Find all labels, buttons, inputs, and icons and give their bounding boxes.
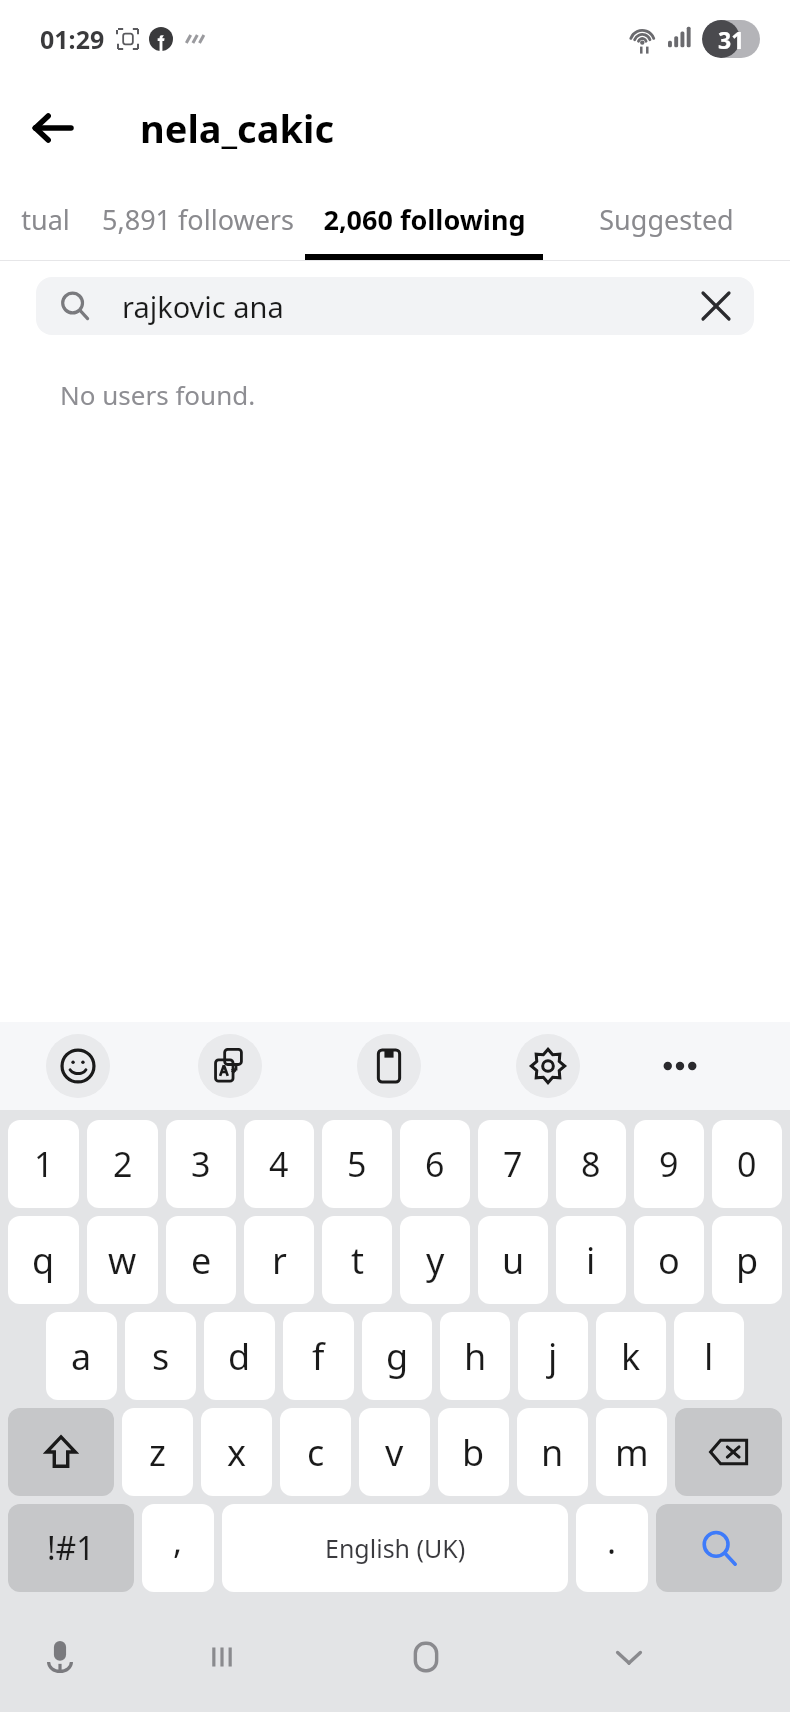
- button[interactable]: h: [440, 1312, 510, 1400]
- staticText: p: [736, 1236, 759, 1285]
- button[interactable]: Settings: [516, 1034, 580, 1098]
- button[interactable]: z: [122, 1408, 193, 1496]
- button[interactable]: !#1: [8, 1504, 134, 1592]
- button[interactable]: f: [283, 1312, 354, 1400]
- button[interactable]: 5,891 followers: [90, 178, 305, 260]
- staticText: 31: [718, 24, 745, 55]
- button[interactable]: k: [596, 1312, 666, 1400]
- button[interactable]: q: [8, 1216, 79, 1304]
- staticText: b: [462, 1428, 485, 1477]
- button[interactable]: rajkovic ana: [36, 277, 754, 335]
- staticText: s: [152, 1332, 170, 1381]
- staticText: x: [227, 1428, 247, 1477]
- staticText: r: [272, 1236, 287, 1285]
- staticText: nela_cakic: [140, 102, 334, 154]
- staticText: 7: [503, 1141, 523, 1187]
- staticText: y: [426, 1236, 445, 1285]
- staticText: m: [615, 1428, 649, 1477]
- staticText: d: [228, 1332, 251, 1381]
- staticText: 5: [347, 1141, 367, 1187]
- button[interactable]: Emoji: [46, 1034, 110, 1098]
- button[interactable]: 2: [87, 1120, 158, 1208]
- button[interactable]: g: [362, 1312, 432, 1400]
- staticText: k: [621, 1332, 641, 1381]
- staticText: i: [586, 1236, 596, 1285]
- button[interactable]: n: [517, 1408, 588, 1496]
- button[interactable]: 8: [556, 1120, 626, 1208]
- staticText: 8: [581, 1141, 601, 1187]
- staticText: 5,891 followers: [102, 201, 294, 238]
- button[interactable]: Recents: [120, 1602, 324, 1712]
- staticText: English (UK): [325, 1531, 466, 1565]
- button[interactable]: English (UK): [222, 1504, 568, 1592]
- staticText: .: [607, 1518, 617, 1564]
- staticText: 4: [269, 1141, 289, 1187]
- button[interactable]: i: [556, 1216, 626, 1304]
- staticText: ,: [173, 1518, 183, 1564]
- button[interactable]: j: [518, 1312, 588, 1400]
- button[interactable]: 6: [400, 1120, 470, 1208]
- button[interactable]: Hide keyboard: [527, 1602, 730, 1712]
- button[interactable]: e: [166, 1216, 236, 1304]
- button[interactable]: p: [712, 1216, 782, 1304]
- button[interactable]: a: [46, 1312, 117, 1400]
- button[interactable]: Home: [324, 1602, 527, 1712]
- button[interactable]: d: [204, 1312, 275, 1400]
- staticText: 6: [425, 1141, 445, 1187]
- staticText: z: [149, 1428, 166, 1477]
- button[interactable]: m: [596, 1408, 667, 1496]
- button[interactable]: Translate: [198, 1034, 262, 1098]
- button[interactable]: s: [125, 1312, 196, 1400]
- button[interactable]: 4: [244, 1120, 314, 1208]
- button[interactable]: Clipboard: [357, 1034, 421, 1098]
- button[interactable]: ,: [142, 1504, 214, 1592]
- button[interactable]: b: [438, 1408, 509, 1496]
- button[interactable]: Voice input: [0, 1602, 120, 1712]
- button[interactable]: v: [359, 1408, 430, 1496]
- button[interactable]: l: [674, 1312, 744, 1400]
- button[interactable]: tual: [0, 178, 90, 260]
- button[interactable]: 2,060 following: [305, 178, 543, 260]
- staticText: e: [191, 1236, 212, 1285]
- staticText: h: [464, 1332, 487, 1381]
- staticText: 2,060 following: [323, 201, 526, 238]
- button[interactable]: c: [280, 1408, 351, 1496]
- button[interactable]: Backspace: [675, 1408, 782, 1496]
- staticText: rajkovic ana: [122, 287, 284, 326]
- button[interactable]: o: [634, 1216, 704, 1304]
- button[interactable]: Shift: [8, 1408, 114, 1496]
- button[interactable]: u: [478, 1216, 548, 1304]
- staticText: w: [108, 1236, 137, 1285]
- button[interactable]: 5: [322, 1120, 392, 1208]
- button[interactable]: Search: [656, 1504, 782, 1592]
- button[interactable]: More options: [648, 1034, 712, 1098]
- staticText: 9: [659, 1141, 679, 1187]
- staticText: t: [351, 1236, 364, 1285]
- button[interactable]: 3: [166, 1120, 236, 1208]
- button[interactable]: .: [576, 1504, 648, 1592]
- staticText: l: [704, 1332, 714, 1381]
- staticText: n: [541, 1428, 564, 1477]
- staticText: No users found.: [60, 377, 256, 412]
- staticText: 0: [737, 1141, 757, 1187]
- button[interactable]: Back: [20, 95, 86, 161]
- button[interactable]: 0: [712, 1120, 782, 1208]
- staticText: o: [658, 1236, 680, 1285]
- button[interactable]: 7: [478, 1120, 548, 1208]
- button[interactable]: x: [201, 1408, 272, 1496]
- staticText: u: [502, 1236, 525, 1285]
- button[interactable]: r: [244, 1216, 314, 1304]
- button[interactable]: 1: [8, 1120, 79, 1208]
- staticText: f: [312, 1332, 325, 1381]
- staticText: Suggested: [599, 201, 734, 238]
- staticText: j: [548, 1332, 558, 1381]
- staticText: 01:29: [40, 22, 105, 56]
- staticText: 2: [113, 1141, 133, 1187]
- staticText: g: [386, 1332, 409, 1381]
- button[interactable]: Suggested: [543, 178, 790, 260]
- button[interactable]: Clear search: [692, 282, 740, 330]
- button[interactable]: y: [400, 1216, 470, 1304]
- button[interactable]: t: [322, 1216, 392, 1304]
- button[interactable]: w: [87, 1216, 158, 1304]
- button[interactable]: 9: [634, 1120, 704, 1208]
